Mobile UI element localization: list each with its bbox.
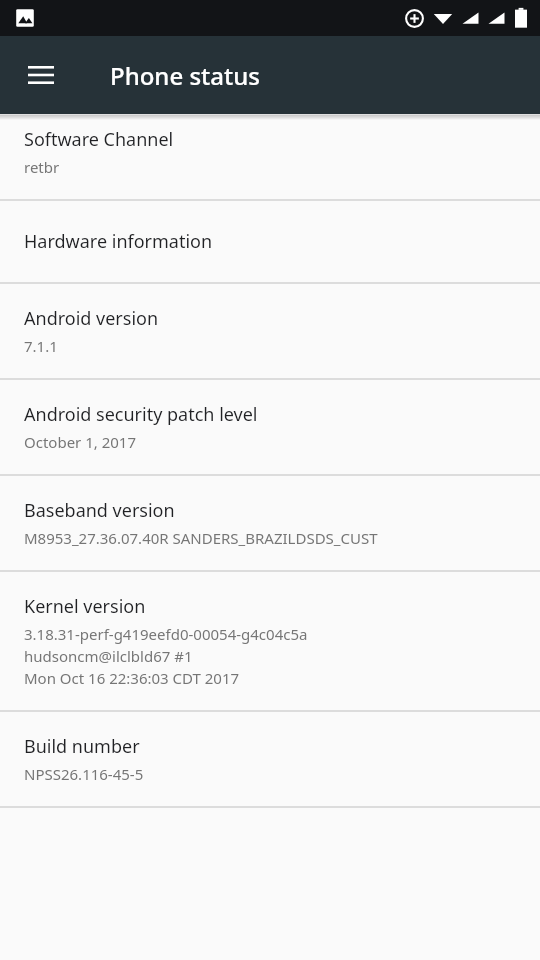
button[interactable]: Android security patch level: [0, 380, 540, 474]
staticText: Mon Oct 16 22:36:03 CDT 2017: [24, 668, 240, 688]
staticText: NPSS26.116-45-5: [24, 764, 144, 784]
button[interactable]: Open navigation drawer: [14, 48, 68, 102]
staticText: 3.18.31-perf-g419eefd0-00054-g4c04c5a: [24, 624, 308, 644]
button[interactable]: Android version: [0, 284, 540, 378]
staticText: Build number: [24, 734, 140, 759]
staticText: M8953_27.36.07.40R SANDERS_BRAZILDSDS_CU…: [24, 528, 378, 548]
staticText: Hardware information: [24, 229, 213, 254]
button[interactable]: Kernel version: [0, 572, 540, 710]
button[interactable]: Build number: [0, 712, 540, 806]
staticText: 7.1.1: [24, 336, 58, 356]
staticText: October 1, 2017: [24, 432, 137, 452]
staticText: hudsoncm@ilclbld67 #1: [24, 646, 193, 666]
button[interactable]: Model: [0, 36, 540, 103]
button[interactable]: Software Channel: [0, 105, 540, 199]
staticText: Phone status: [110, 59, 260, 92]
button[interactable]: Baseband version: [0, 476, 540, 570]
staticText: Software Channel: [24, 127, 174, 152]
button[interactable]: Hardware information: [0, 201, 540, 282]
staticText: Kernel version: [24, 594, 146, 619]
staticText: retbr: [24, 157, 60, 177]
staticText: Android version: [24, 306, 159, 331]
staticText: Android security patch level: [24, 402, 258, 427]
staticText: Baseband version: [24, 498, 175, 523]
